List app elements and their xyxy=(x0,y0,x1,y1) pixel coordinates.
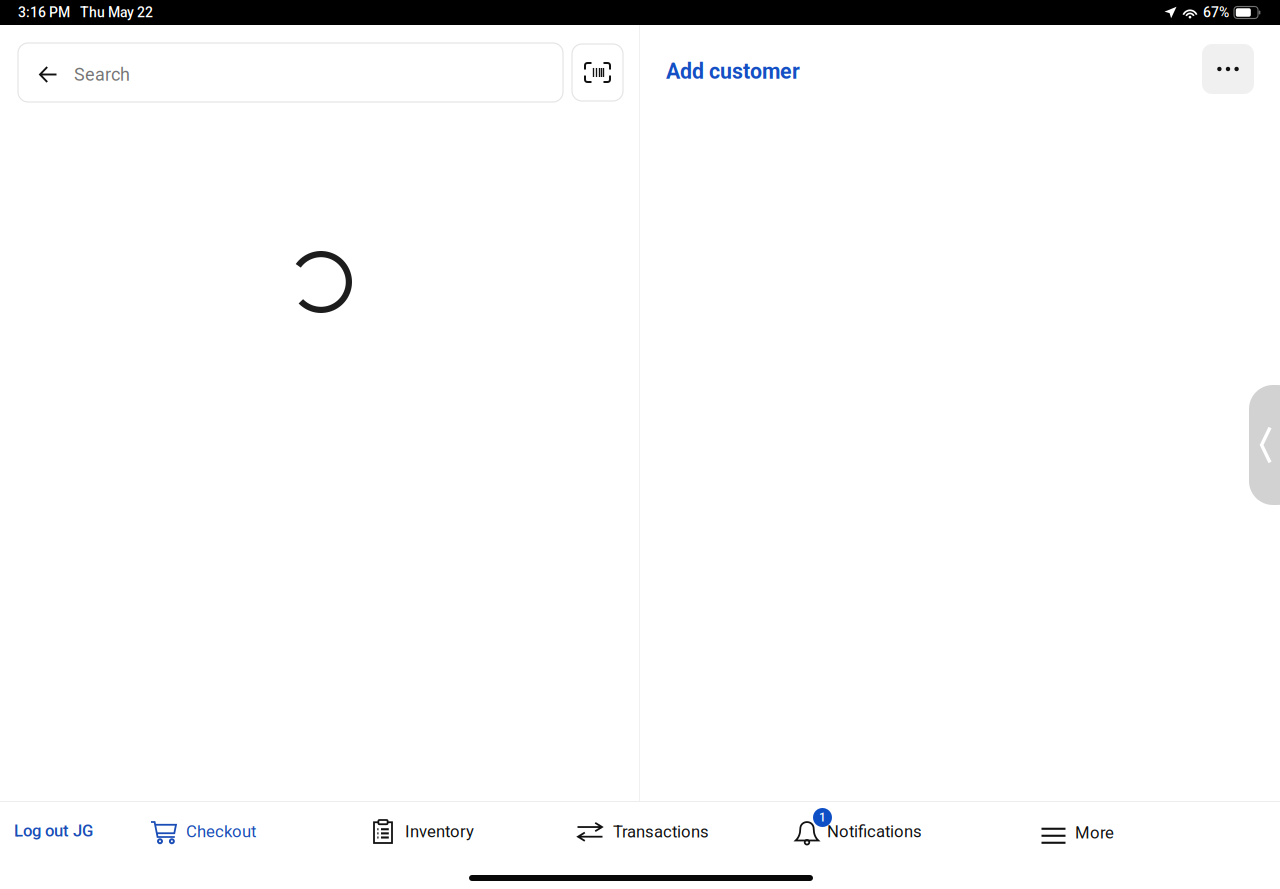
staticText: Thu May 22 xyxy=(80,4,153,21)
button[interactable]: Transactions xyxy=(577,814,709,849)
button[interactable]: More xyxy=(1041,818,1114,853)
button[interactable]: Add customer xyxy=(660,51,806,92)
button[interactable]: Inventory xyxy=(373,811,474,852)
staticText: 67% xyxy=(1203,4,1229,21)
staticText: Checkout xyxy=(186,822,256,841)
button[interactable]: More options xyxy=(1202,44,1254,94)
staticText: Search xyxy=(74,64,130,85)
staticText: Add customer xyxy=(666,59,800,84)
staticText: More xyxy=(1075,823,1114,842)
button[interactable]: Checkout xyxy=(150,811,256,852)
staticText: Notifications xyxy=(827,822,922,841)
button[interactable]: 1 xyxy=(795,811,922,852)
button[interactable]: Scan barcode xyxy=(572,44,623,101)
button[interactable]: Open panel xyxy=(1249,385,1280,505)
button[interactable]: Search xyxy=(18,43,563,102)
staticText: 3:16 PM xyxy=(18,4,70,21)
staticText: 1 xyxy=(819,810,826,825)
button[interactable]: Log out JG xyxy=(10,811,97,850)
staticText: Inventory xyxy=(405,822,474,841)
staticText: Log out JG xyxy=(14,821,93,840)
staticText: Transactions xyxy=(613,822,709,841)
